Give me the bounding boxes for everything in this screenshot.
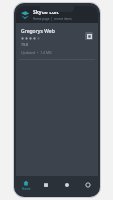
staticText: Gregorys Web (21, 28, 55, 35)
button[interactable]: Add (56, 176, 77, 194)
staticText: Home page | recent items (33, 17, 72, 21)
other: App logo (20, 10, 30, 20)
button[interactable]: Download (85, 32, 93, 40)
button[interactable]: Gregorys Web (16, 26, 98, 57)
button[interactable]: Files (36, 176, 56, 194)
staticText: Updated • 1.4 MB (21, 50, 52, 55)
staticText: Skyde Edit (33, 9, 59, 16)
button[interactable]: Home (16, 176, 36, 194)
staticText: Home (22, 187, 31, 191)
button[interactable]: More (77, 176, 98, 194)
staticText: 19.8 (21, 42, 28, 47)
